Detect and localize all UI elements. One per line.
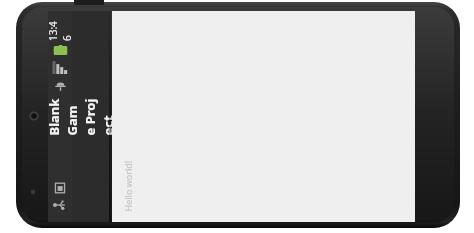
- staticText: Hello world!: [121, 160, 133, 211]
- other: Signal strength: [52, 61, 68, 74]
- button[interactable]: Blank Game Project: [72, 11, 109, 222]
- staticText: 13:46: [46, 17, 74, 41]
- other: Status bar: [48, 11, 72, 222]
- other: Silent mode: [54, 80, 67, 93]
- other: Battery: [52, 45, 69, 56]
- other: USB connected: [53, 199, 67, 211]
- staticText: Blank Game Project: [44, 98, 116, 135]
- other: SD card: [54, 182, 66, 194]
